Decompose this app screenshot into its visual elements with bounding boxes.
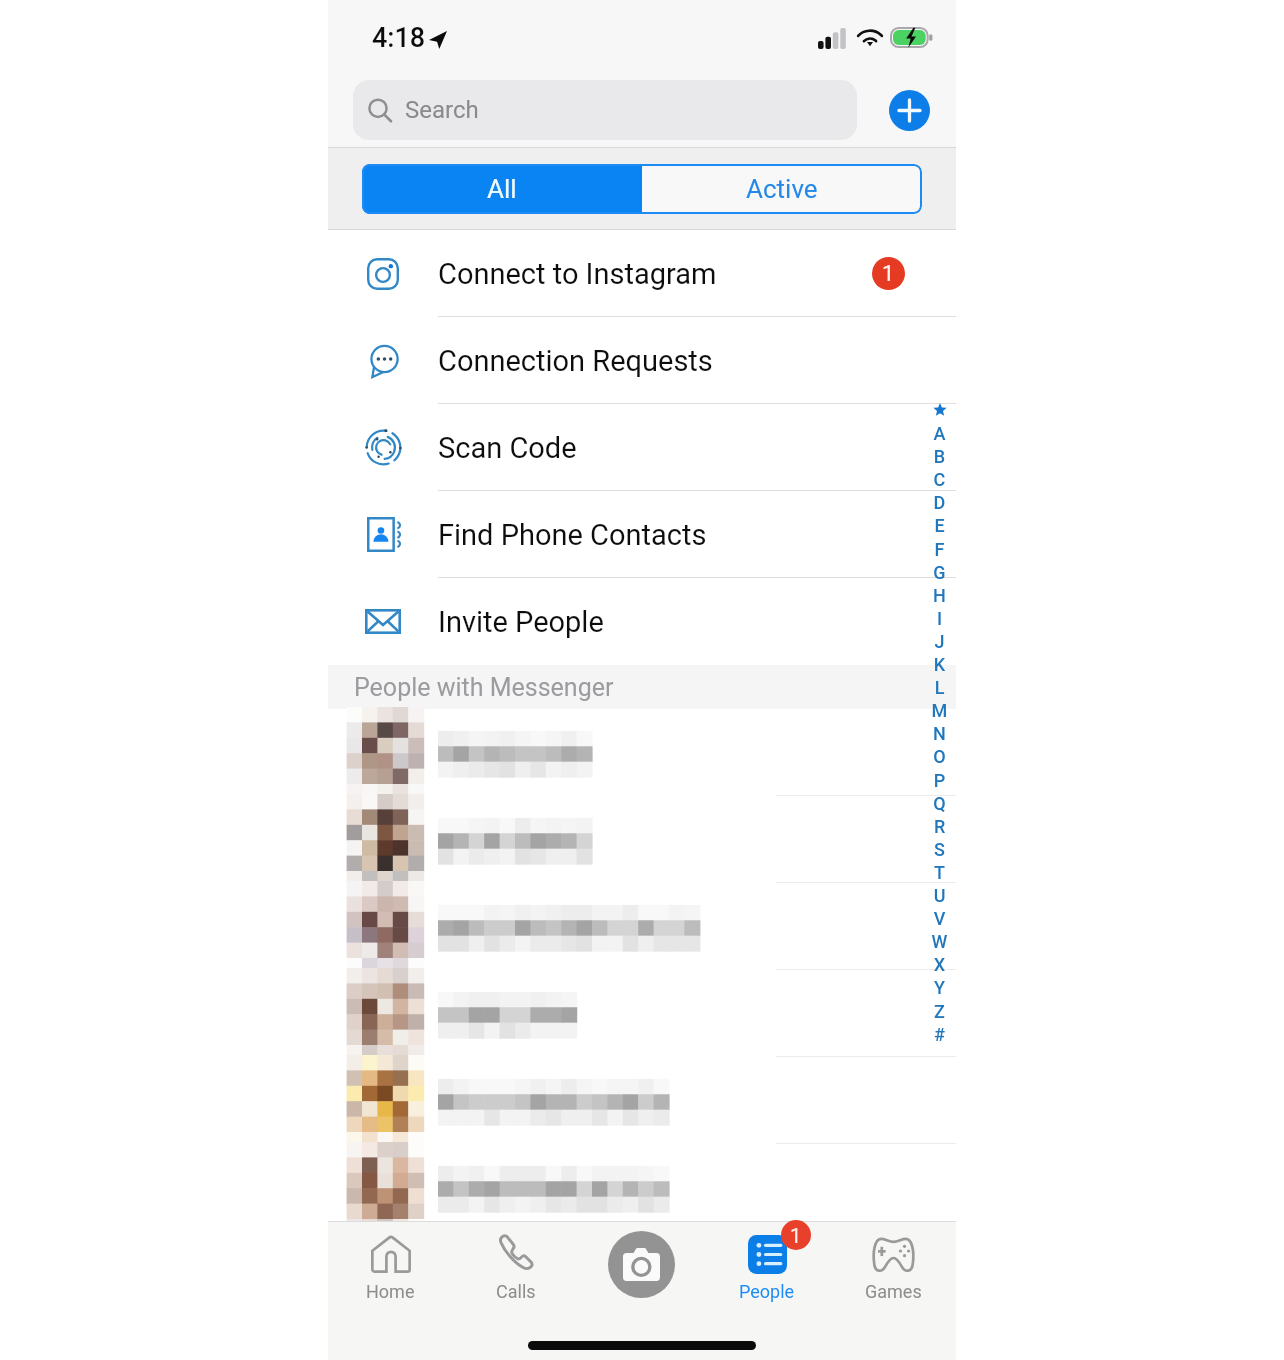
staticText: Find Phone Contacts <box>438 518 707 552</box>
button[interactable]: Find Phone Contacts <box>328 491 956 578</box>
staticText: Search <box>405 96 479 124</box>
staticText: H <box>923 585 956 606</box>
staticText: Scan Code <box>438 431 577 465</box>
button[interactable] <box>328 883 956 970</box>
staticText: 1 <box>790 1224 802 1247</box>
staticText: Calls <box>496 1281 536 1302</box>
button[interactable] <box>328 970 956 1057</box>
staticText: Connect to Instagram <box>438 257 717 291</box>
staticText: Home <box>366 1281 415 1302</box>
staticText: D <box>923 492 956 513</box>
staticText: Z <box>923 1001 956 1022</box>
staticText: E <box>923 515 956 536</box>
staticText: C <box>923 469 956 490</box>
button[interactable]: 1 <box>704 1227 830 1327</box>
staticText: P <box>923 770 956 791</box>
button[interactable]: Home <box>328 1227 453 1327</box>
staticText: O <box>923 746 956 767</box>
button[interactable] <box>328 796 956 883</box>
staticText: Q <box>923 793 956 814</box>
button[interactable] <box>328 709 956 796</box>
button[interactable]: Alphabet index <box>923 398 956 1048</box>
button[interactable]: Connect to Instagram <box>328 230 956 317</box>
staticText: N <box>923 723 956 744</box>
staticText: B <box>923 446 956 467</box>
button[interactable]: Camera <box>578 1227 704 1327</box>
button[interactable]: Connection Requests <box>328 317 956 404</box>
staticText: T <box>923 862 956 883</box>
staticText: # <box>923 1024 956 1045</box>
staticText: K <box>923 654 956 675</box>
staticText: V <box>923 908 956 929</box>
staticText: Games <box>865 1281 922 1302</box>
button[interactable]: Invite People <box>328 578 956 665</box>
staticText: Y <box>923 977 956 998</box>
button[interactable] <box>328 1057 956 1144</box>
staticText: S <box>923 839 956 860</box>
staticText: J <box>923 631 956 652</box>
staticText: R <box>923 816 956 837</box>
staticText: Active <box>746 174 818 204</box>
staticText: People with Messenger <box>354 673 614 702</box>
button[interactable]: Games <box>830 1227 956 1327</box>
staticText: People <box>739 1281 795 1302</box>
staticText: 4:18 <box>372 22 426 54</box>
staticText: 1 <box>882 261 895 287</box>
button[interactable]: New message <box>889 90 930 131</box>
button[interactable]: All <box>362 164 642 214</box>
staticText: M <box>923 700 956 721</box>
button[interactable] <box>328 1144 956 1231</box>
staticText: F <box>923 539 956 560</box>
staticText: W <box>923 931 956 952</box>
staticText: L <box>923 677 956 698</box>
staticText: G <box>923 562 956 583</box>
staticText: All <box>487 174 517 204</box>
button[interactable]: Active <box>642 164 922 214</box>
button[interactable]: Calls <box>453 1227 578 1327</box>
staticText: X <box>923 954 956 975</box>
button[interactable]: Search <box>353 80 857 140</box>
staticText: U <box>923 885 956 906</box>
staticText: Invite People <box>438 605 604 639</box>
staticText: A <box>923 423 956 444</box>
staticText: Connection Requests <box>438 344 713 378</box>
staticText: I <box>923 608 956 629</box>
button[interactable]: Scan Code <box>328 404 956 491</box>
